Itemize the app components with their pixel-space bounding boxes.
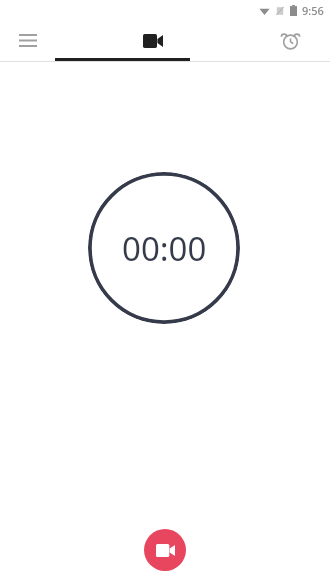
button[interactable]: Menu bbox=[0, 20, 55, 61]
button[interactable]: Start recording bbox=[144, 529, 186, 571]
button[interactable]: Scheduled recordings bbox=[250, 20, 330, 61]
staticText: 00:00 bbox=[122, 226, 207, 271]
staticText: 9:56 bbox=[302, 3, 324, 18]
button[interactable]: Recording timer 00:00 bbox=[88, 172, 240, 324]
button[interactable]: Video recorder tab bbox=[55, 20, 250, 61]
